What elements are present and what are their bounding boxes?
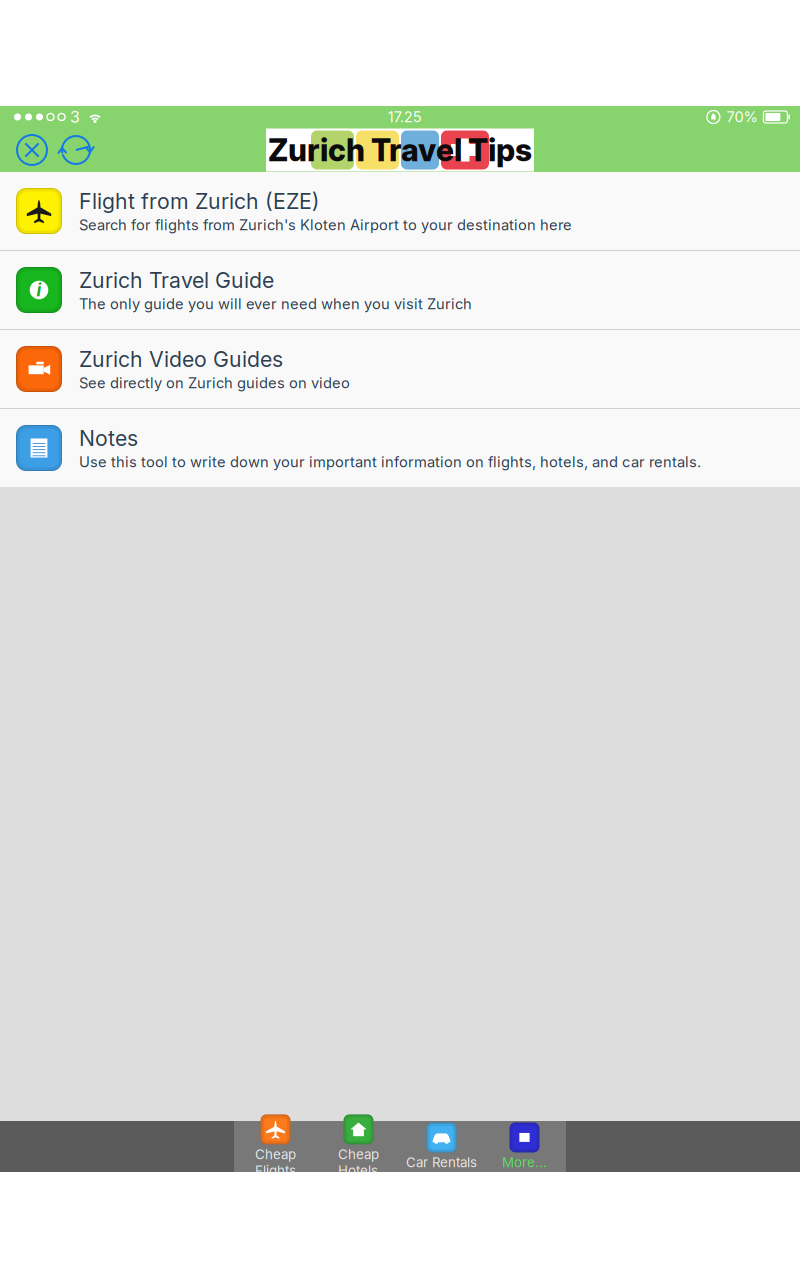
staticText: Zurich Travel Tips xyxy=(268,131,532,168)
staticText: Zurich Travel Guide xyxy=(79,267,274,293)
button[interactable]: Cheap Flights xyxy=(234,1121,317,1172)
staticText: More... xyxy=(502,1154,547,1170)
staticText: Flight from Zurich (EZE) xyxy=(79,188,320,214)
staticText: Notes xyxy=(79,425,138,451)
staticText: Zurich Video Guides xyxy=(79,346,283,372)
button[interactable]: Close xyxy=(10,128,54,172)
staticText: 17.25 xyxy=(388,108,422,126)
staticText: Cheap Hotels xyxy=(338,1146,379,1179)
staticText: Search for flights from Zurich's Kloten … xyxy=(79,216,572,234)
button[interactable]: i xyxy=(0,251,800,329)
button[interactable]: More... xyxy=(483,1121,566,1172)
staticText: 70% xyxy=(726,108,757,126)
button[interactable]: Zurich Video Guides xyxy=(0,330,800,408)
button[interactable]: Car Rentals xyxy=(400,1121,483,1172)
button[interactable]: Cheap Hotels xyxy=(317,1121,400,1172)
button[interactable]: Refresh xyxy=(54,128,98,172)
staticText: Use this tool to write down your importa… xyxy=(79,453,701,471)
staticText: Cheap Flights xyxy=(255,1146,296,1179)
staticText: i xyxy=(36,279,41,300)
button[interactable]: Notes xyxy=(0,409,800,487)
button[interactable]: Flight from Zurich (EZE) xyxy=(0,172,800,250)
staticText: 3 xyxy=(70,107,80,127)
staticText: See directly on Zurich guides on video xyxy=(79,374,350,392)
staticText: The only guide you will ever need when y… xyxy=(79,295,472,313)
staticText: Car Rentals xyxy=(406,1154,477,1170)
